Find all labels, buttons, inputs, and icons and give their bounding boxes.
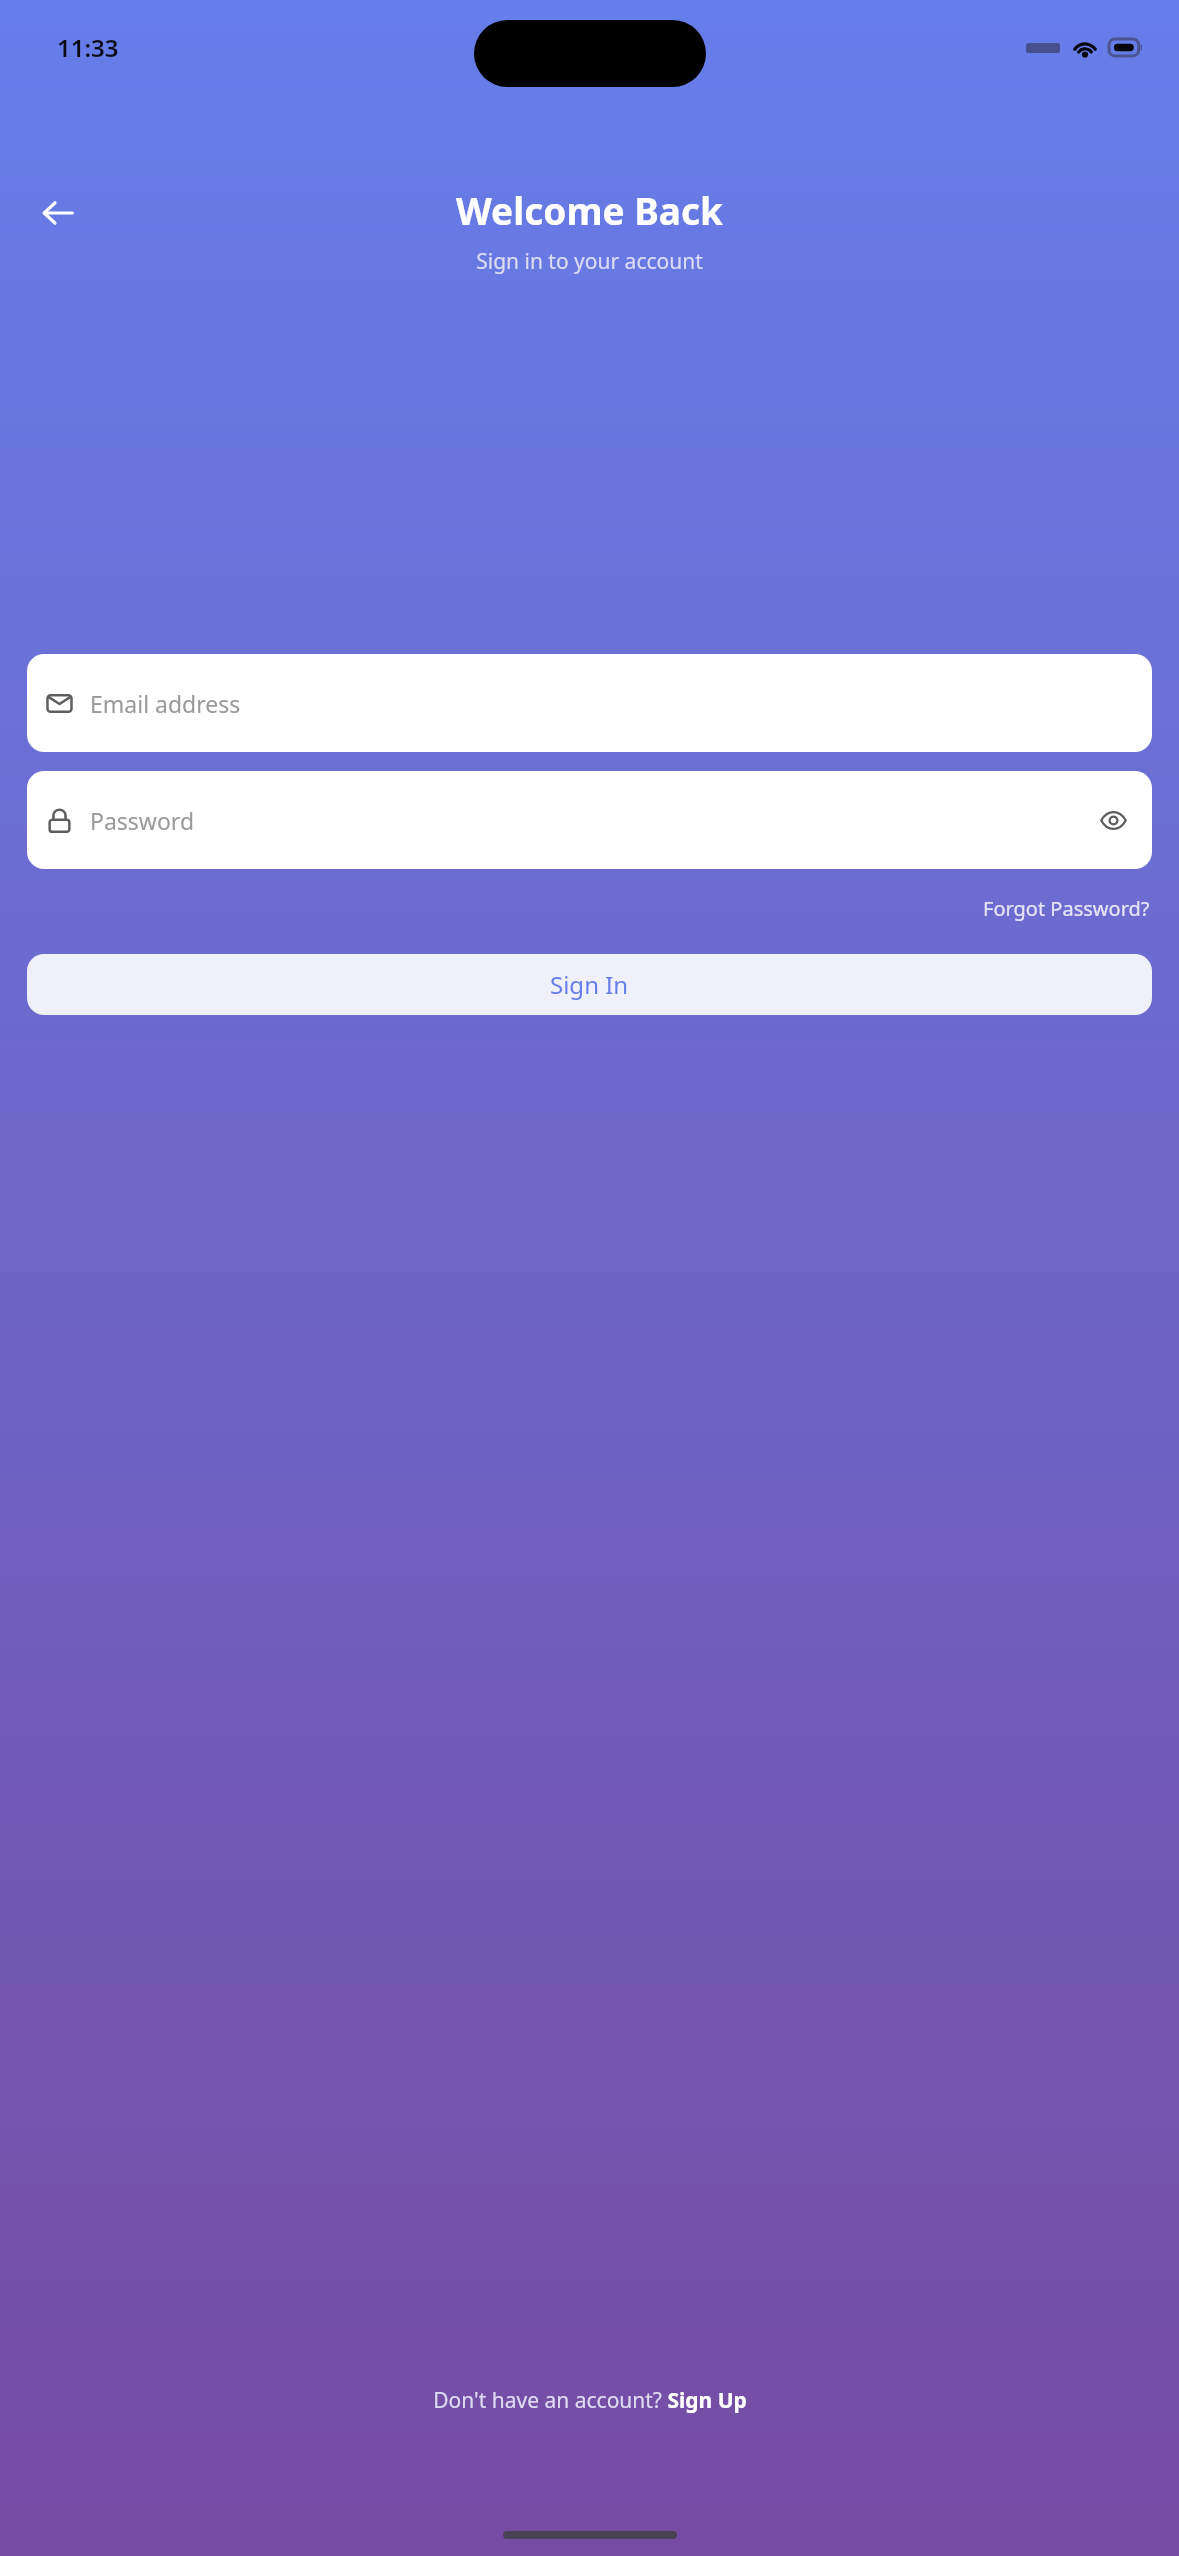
button[interactable]: Show password [1093,800,1133,840]
staticText: Sign in to your account [476,247,703,276]
button[interactable]: Back [30,185,86,241]
button[interactable]: Email address [27,654,1152,752]
staticText: Forgot Password? [983,895,1150,922]
button[interactable]: Sign In [27,954,1152,1015]
button[interactable]: Password [27,771,1152,869]
staticText: 11:33 [57,31,119,64]
staticText: Don't have an account? Sign Up [433,2386,747,2415]
staticText: Password [90,805,195,836]
staticText: Sign In [550,968,629,1001]
button[interactable]: Forgot Password? [981,891,1152,926]
staticText: Email address [90,688,241,719]
staticText: Welcome Back [456,185,723,235]
button[interactable]: Don't have an account? Sign Up [425,2380,755,2421]
